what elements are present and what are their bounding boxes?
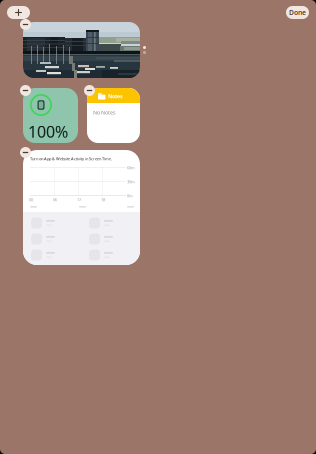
staticText: Done [289, 8, 306, 17]
staticText: Notes [108, 93, 123, 100]
staticText: 18 [101, 197, 105, 202]
button[interactable]: Add widget [7, 6, 30, 19]
staticText: 100% [28, 121, 68, 142]
button[interactable]: Remove widget [20, 85, 31, 96]
button[interactable]: 100% [23, 88, 78, 143]
staticText: 0m [127, 193, 133, 198]
button[interactable]: Done [286, 6, 309, 19]
staticText: 00 [29, 197, 33, 202]
staticText: 06 [53, 197, 57, 202]
button[interactable]: Turn on App & Website Activity in Screen… [23, 150, 140, 265]
staticText: Turn on App & Website Activity in Screen… [30, 156, 112, 161]
button[interactable]: Remove widget [20, 19, 31, 30]
button[interactable]: Remove widget [84, 85, 95, 96]
staticText: No Notes [93, 109, 116, 116]
button[interactable]: Remove widget [20, 147, 31, 158]
staticText: 60m [127, 165, 135, 170]
staticText: 12 [77, 197, 81, 202]
button[interactable]: Notes [87, 88, 140, 143]
staticText: 30m [127, 179, 135, 184]
